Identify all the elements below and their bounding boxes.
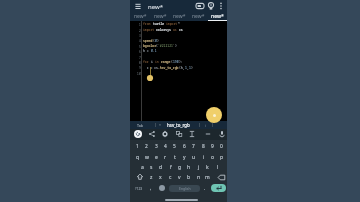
button[interactable]: Hint — [206, 1, 216, 11]
button[interactable]: * — [156, 121, 163, 129]
button[interactable]: 3 — [152, 141, 161, 151]
button[interactable]: k — [203, 162, 212, 172]
staticText: new* — [134, 13, 147, 20]
staticText: ( — [171, 60, 173, 64]
button[interactable]: 0 — [217, 141, 226, 151]
staticText: 3 — [155, 143, 158, 150]
staticText: r — [164, 154, 167, 161]
button[interactable]: r — [161, 152, 170, 162]
staticText: 1 — [185, 66, 187, 70]
button[interactable]: Emoji — [157, 183, 166, 193]
button[interactable]: y — [180, 152, 189, 162]
staticText: .hsv_to_rgb — [158, 66, 179, 70]
button[interactable]: i — [199, 152, 208, 162]
button[interactable]: d — [156, 162, 165, 172]
button[interactable]: c — [166, 172, 175, 182]
button[interactable]: w — [142, 152, 151, 162]
button[interactable]: s — [147, 162, 156, 172]
button[interactable]: m — [203, 172, 212, 182]
button[interactable]: Settings — [160, 129, 170, 139]
staticText: d — [159, 164, 163, 171]
staticText: as — [173, 28, 179, 32]
staticText: ) — [191, 66, 193, 70]
button[interactable]: g — [175, 162, 184, 172]
button[interactable]: n — [194, 172, 203, 182]
staticText: from — [143, 22, 153, 26]
button[interactable]: b — [184, 172, 193, 182]
button[interactable]: q — [133, 152, 142, 162]
button[interactable]: l — [213, 162, 222, 172]
staticText: a — [141, 164, 144, 171]
button[interactable]: t — [170, 152, 179, 162]
staticText: 0.1 — [151, 49, 157, 53]
button[interactable]: new* — [189, 12, 208, 21]
button[interactable]: z — [147, 172, 156, 182]
staticText: 4 — [164, 143, 167, 150]
staticText: , — [187, 66, 189, 70]
button[interactable]: Share — [147, 129, 157, 139]
button[interactable]: j — [194, 162, 203, 172]
button[interactable]: Voice input — [217, 129, 227, 139]
button[interactable]: p — [217, 152, 226, 162]
button[interactable]: Enter — [211, 184, 226, 192]
staticText: c — [169, 174, 172, 181]
button[interactable]: i — [200, 121, 210, 129]
button[interactable]: English — [169, 185, 200, 192]
staticText: i — [205, 123, 206, 128]
button[interactable]: 4 — [161, 141, 170, 151]
staticText: cs — [179, 28, 183, 32]
staticText: * — [159, 123, 161, 128]
button[interactable]: e — [152, 152, 161, 162]
staticText: j — [198, 164, 200, 171]
staticText: (h, — [179, 66, 185, 70]
staticText: ) — [157, 39, 159, 43]
button[interactable]: More options — [216, 1, 226, 11]
button[interactable]: 6 — [180, 141, 189, 151]
staticText: 1 — [134, 22, 141, 27]
staticText: ?123 — [135, 186, 143, 191]
button[interactable]: v — [175, 172, 184, 182]
button[interactable]: new* — [208, 12, 227, 21]
button[interactable]: Menu — [134, 2, 142, 10]
button[interactable]: ?123 — [133, 183, 145, 193]
button[interactable]: x — [156, 172, 165, 182]
button[interactable]: 2 — [142, 141, 151, 151]
staticText: m — [205, 174, 210, 181]
button[interactable]: Shift — [133, 172, 146, 182]
staticText: 9 — [211, 143, 214, 150]
button[interactable]: 8 — [199, 141, 208, 151]
button[interactable]: h — [184, 162, 193, 172]
button[interactable]: hsv_to_rgb — [163, 121, 193, 129]
staticText: 2 — [134, 28, 141, 33]
button[interactable]: new* — [170, 12, 189, 21]
button[interactable]: 1 — [133, 141, 142, 151]
button[interactable]: , — [146, 183, 156, 193]
button[interactable]: Tab — [133, 121, 147, 129]
button[interactable]: u — [189, 152, 198, 162]
button[interactable]: new* — [150, 12, 170, 21]
button[interactable]: o — [208, 152, 217, 162]
button[interactable]: More — [203, 129, 213, 139]
staticText: turtle — [153, 22, 166, 26]
staticText: in — [155, 60, 161, 64]
button[interactable]: Console — [195, 1, 205, 11]
staticText: x — [159, 174, 162, 181]
button[interactable]: a — [138, 162, 147, 172]
button[interactable]: 7 — [189, 141, 198, 151]
staticText: w — [145, 154, 149, 161]
button[interactable]: Run — [206, 107, 222, 123]
button[interactable]: . — [201, 183, 209, 193]
staticText: k — [206, 164, 209, 171]
button[interactable]: new* — [130, 12, 150, 21]
button[interactable]: 9 — [208, 141, 217, 151]
button[interactable]: Text editing — [187, 129, 197, 139]
button[interactable]: Backspace — [215, 172, 228, 182]
button[interactable]: f — [166, 162, 175, 172]
staticText: h = — [143, 49, 151, 53]
staticText: 6 — [134, 49, 141, 54]
button[interactable]: Google — [134, 130, 142, 138]
button[interactable]: 5 — [170, 141, 179, 151]
staticText: 7 — [192, 143, 195, 150]
button[interactable]: Translate — [174, 129, 184, 139]
staticText: colorsys — [156, 28, 173, 32]
